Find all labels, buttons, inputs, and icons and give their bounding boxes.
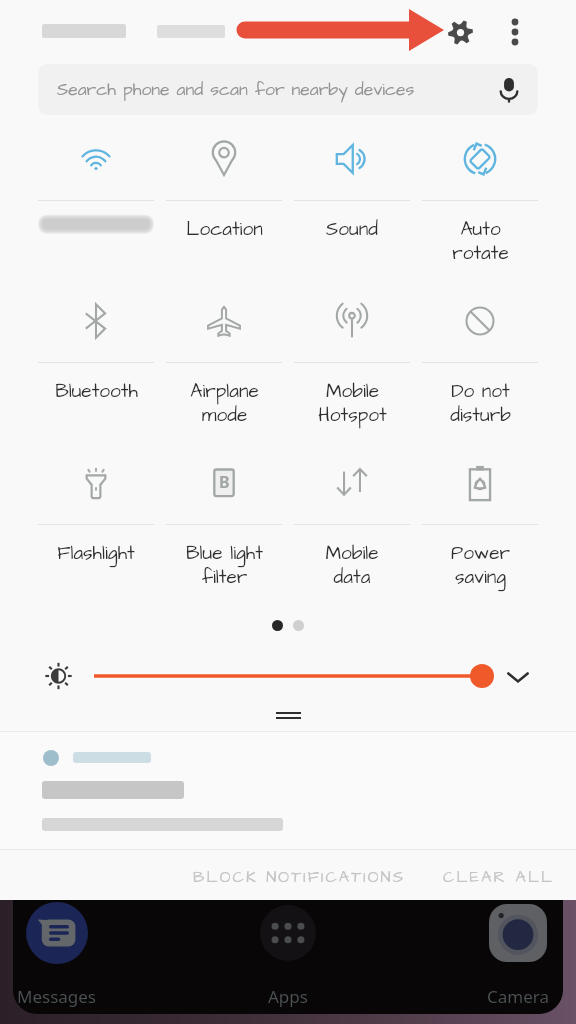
staticText: Search phone and scan for nearby devices (57, 78, 415, 102)
button[interactable]: Expand brightness (503, 662, 533, 692)
staticText: Apps (268, 985, 308, 1008)
staticText: Location (186, 216, 263, 242)
button[interactable]: Settings (436, 8, 484, 56)
button[interactable]: Bluetooth (32, 293, 160, 455)
staticText: Mobile Hotspot (318, 378, 387, 429)
staticText: Messages (17, 985, 97, 1008)
staticText: B (219, 471, 230, 493)
staticText: Sound (326, 216, 378, 242)
staticText: Blue light filter (186, 540, 263, 591)
button[interactable]: Power saving (416, 455, 544, 617)
staticText: BLOCK NOTIFICATIONS (193, 866, 406, 888)
staticText: Bluetooth (55, 378, 138, 404)
staticText: Camera (487, 985, 549, 1008)
button[interactable]: Camera (458, 902, 576, 1012)
button[interactable]: Messages (0, 902, 117, 1012)
button[interactable]: Apps (228, 902, 348, 1012)
button[interactable]: Location (160, 131, 288, 293)
button[interactable]: Search phone and scan for nearby devices (38, 64, 538, 115)
staticText: Auto rotate (452, 216, 509, 267)
button[interactable]: B (160, 455, 288, 617)
button[interactable] (32, 131, 160, 293)
staticText: Flashlight (57, 540, 135, 566)
button[interactable]: BLOCK NOTIFICATIONS (181, 857, 418, 897)
button[interactable]: Do not disturb (416, 293, 544, 455)
button[interactable]: Brightness slider (84, 661, 504, 691)
staticText: Airplane mode (190, 378, 259, 429)
staticText: Mobile data (325, 540, 379, 591)
button[interactable]: Mobile Hotspot (288, 293, 416, 455)
button[interactable]: Flashlight (32, 455, 160, 617)
button[interactable]: More options (491, 8, 539, 56)
button[interactable]: CLEAR ALL (431, 857, 567, 897)
staticText: CLEAR ALL (443, 866, 555, 888)
staticText: Power saving (451, 540, 510, 591)
button[interactable]: Sound (288, 131, 416, 293)
staticText: Do not disturb (450, 378, 511, 429)
button[interactable]: Airplane mode (160, 293, 288, 455)
button[interactable]: Mobile data (288, 455, 416, 617)
button[interactable]: Auto rotate (416, 131, 544, 293)
